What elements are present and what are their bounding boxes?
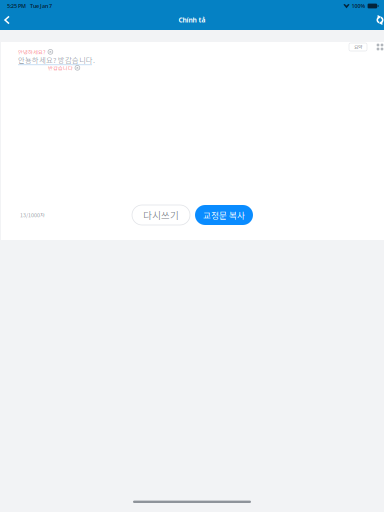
button[interactable]: 교정문 복사 — [195, 205, 253, 225]
staticText: 13/1000자 — [20, 211, 45, 219]
staticText: 반갑습니다 — [48, 64, 73, 72]
staticText: 안녕하세요? — [18, 48, 46, 56]
staticText: 요약 — [354, 43, 362, 50]
button[interactable]: 다시쓰기 — [132, 205, 190, 225]
staticText: Tue Jan 7 — [30, 2, 52, 10]
staticText: Chính tả — [178, 16, 205, 24]
button[interactable]: Back — [0, 11, 14, 29]
staticText: 5:25 PM — [7, 2, 26, 10]
staticText: 교정문 복사 — [203, 209, 245, 221]
button[interactable]: Keyboard layout — [376, 43, 384, 51]
button[interactable]: Rotate — [373, 11, 384, 29]
button[interactable]: 요약 — [349, 43, 367, 51]
staticText: 안뇽하세요? 방갑습니다. — [18, 54, 95, 65]
staticText: 100% — [352, 2, 366, 10]
staticText: 다시쓰기 — [143, 208, 179, 222]
